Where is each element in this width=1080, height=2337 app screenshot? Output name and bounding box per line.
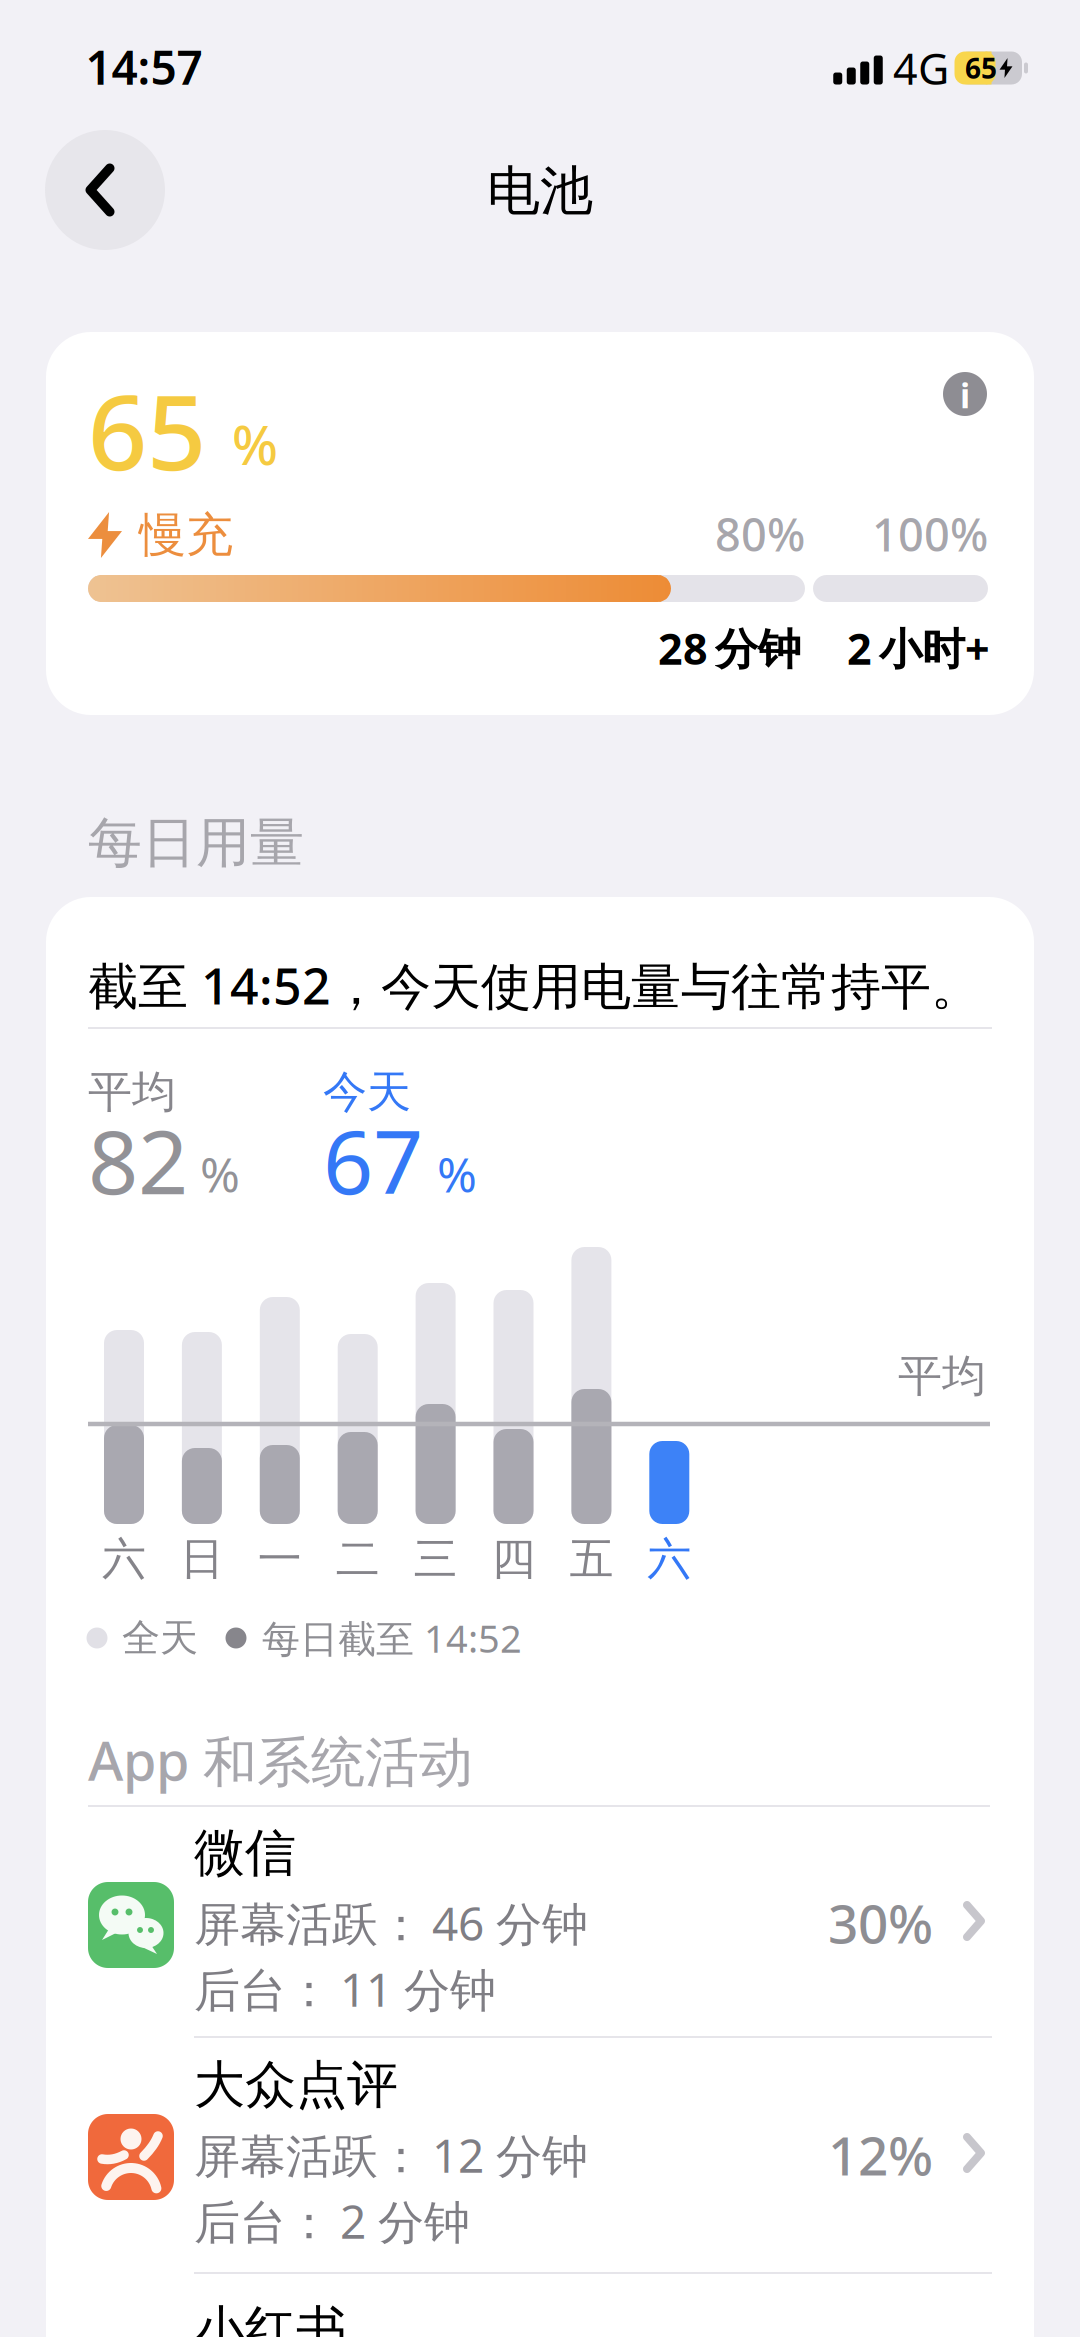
staticText: % <box>232 411 278 477</box>
button[interactable]: 小红书 <box>46 2274 1034 2337</box>
staticText: 大众点评 <box>194 2056 398 2114</box>
button[interactable]: Info <box>943 372 987 416</box>
staticText: 2 小时+ <box>847 622 990 674</box>
staticText: 一 <box>258 1534 302 1584</box>
staticText: 日 <box>180 1534 224 1584</box>
staticText: 截至 14:52，今天使用电量与往常持平。 <box>88 954 981 1016</box>
staticText: 五 <box>569 1534 613 1584</box>
staticText: 30% <box>828 1890 933 1955</box>
button[interactable]: 微信 <box>46 1806 1034 2038</box>
staticText: 微信 <box>194 1824 296 1882</box>
staticText: 每日用量 <box>88 812 304 874</box>
staticText: 4G <box>893 42 949 94</box>
staticText: 小红书 <box>194 2301 347 2337</box>
staticText: 四 <box>491 1534 535 1584</box>
staticText: 12% <box>828 2122 933 2187</box>
staticText: 82 <box>88 1106 188 1214</box>
staticText: 平均 <box>898 1351 986 1401</box>
staticText: 后台： 2 分钟 <box>194 2193 470 2249</box>
staticText: 100% <box>872 506 988 562</box>
staticText: % <box>437 1145 477 1203</box>
button[interactable]: 大众点评 <box>46 2038 1034 2270</box>
staticText: 二 <box>336 1534 380 1584</box>
staticText: 六 <box>102 1534 146 1584</box>
staticText: 屏幕活跃： 12 分钟 <box>194 2127 588 2183</box>
staticText: 平均 <box>88 1067 176 1117</box>
staticText: 每日截至 14:52 <box>262 1615 522 1661</box>
staticText: 今天 <box>323 1067 411 1117</box>
staticText: 14:57 <box>85 39 202 95</box>
staticText: 电池 <box>487 161 593 221</box>
staticText: 65 <box>88 366 206 494</box>
staticText: App 和系统活动 <box>88 1727 473 1793</box>
staticText: 后台： 11 分钟 <box>194 1961 496 2017</box>
staticText: 全天 <box>122 1616 198 1660</box>
staticText: i <box>960 374 970 416</box>
staticText: 80% <box>715 506 805 562</box>
button[interactable]: Back <box>45 130 165 250</box>
staticText: 屏幕活跃： 46 分钟 <box>194 1895 588 1951</box>
staticText: % <box>200 1145 240 1203</box>
staticText: 28 分钟 <box>658 622 801 674</box>
staticText: 三 <box>414 1534 458 1584</box>
staticText: 慢充 <box>139 508 233 562</box>
staticText: 65 <box>965 51 997 85</box>
staticText: 六 <box>647 1534 691 1584</box>
staticText: 67 <box>323 1106 423 1214</box>
